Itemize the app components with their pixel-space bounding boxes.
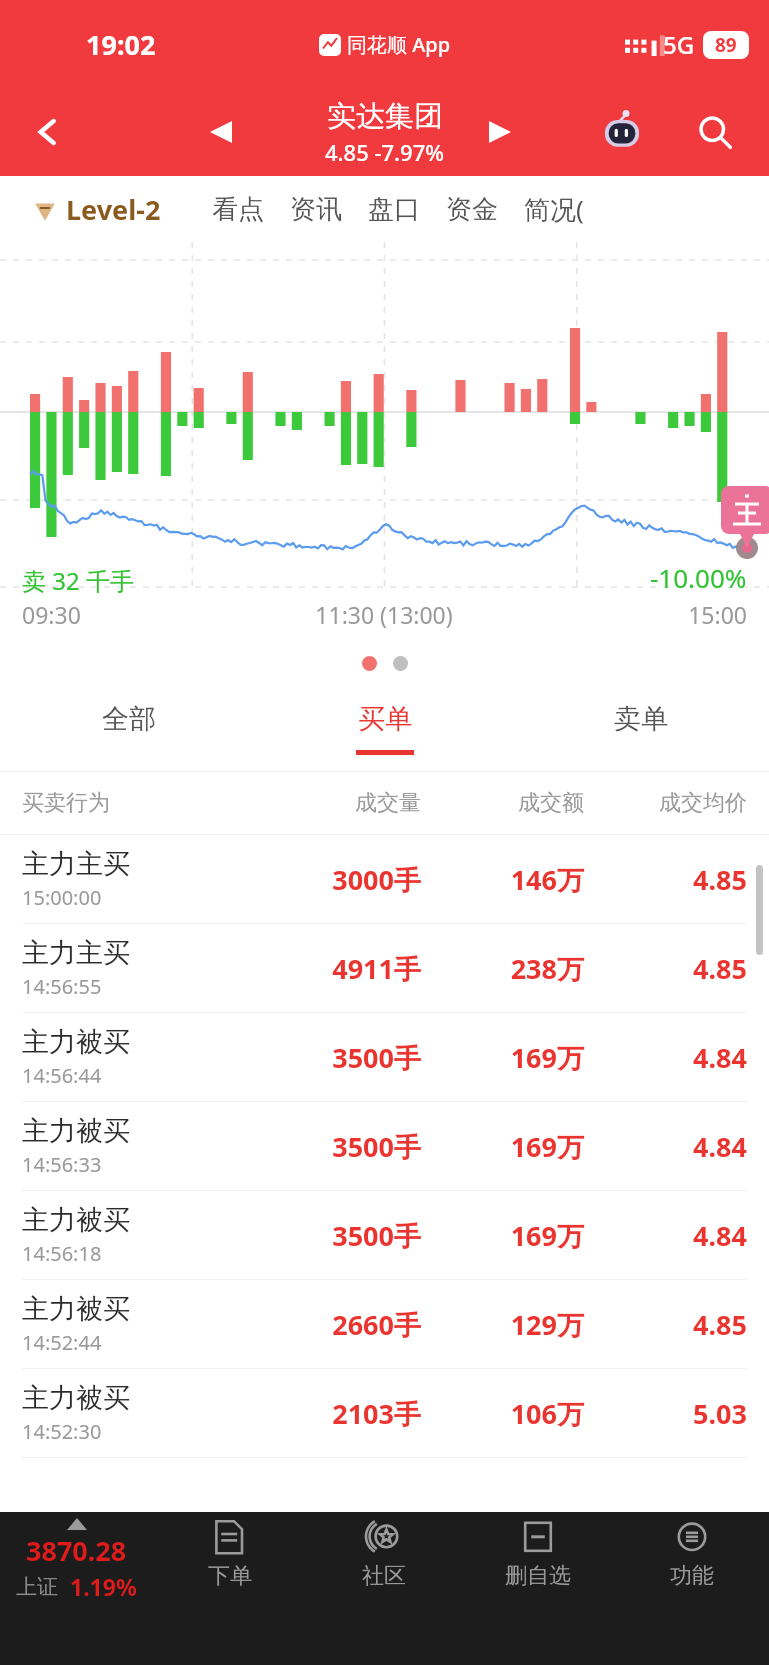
staticText: 全部 — [102, 702, 156, 736]
staticText: 卖 32 千手 — [22, 564, 134, 597]
button[interactable]: 简况( — [511, 191, 597, 227]
staticText: 14:52:44 — [22, 1329, 102, 1356]
staticText: 5.03 — [584, 1395, 747, 1432]
button[interactable]: AI assistant — [595, 105, 649, 159]
staticText: 4.84 — [584, 1039, 747, 1076]
staticText: 成交均价 — [584, 789, 747, 817]
staticText: 社区 — [362, 1562, 406, 1590]
staticText: 1.19% — [70, 1571, 137, 1602]
staticText: 3000手 — [258, 861, 421, 898]
staticText: 146万 — [421, 861, 584, 898]
button[interactable]: Previous stock — [196, 107, 246, 157]
staticText: 资金 — [446, 193, 498, 226]
button[interactable]: 主力被买 — [0, 1013, 769, 1101]
staticText: 资讯 — [290, 193, 342, 226]
staticText: 上证 — [16, 1574, 58, 1600]
staticText: 功能 — [670, 1562, 714, 1590]
staticText: 主力主买 — [22, 847, 130, 881]
staticText: 4.84 — [584, 1217, 747, 1254]
staticText: 实达集团 — [327, 98, 443, 135]
button[interactable]: 资讯 — [277, 193, 355, 226]
staticText: 下单 — [208, 1562, 252, 1590]
button[interactable]: 下单 — [153, 1512, 307, 1622]
staticText: 169万 — [421, 1217, 584, 1254]
staticText: 2103手 — [258, 1395, 421, 1432]
button[interactable]: 删自选 — [461, 1512, 615, 1622]
staticText: 19:02 — [86, 26, 156, 63]
staticText: 15:00 — [505, 599, 747, 630]
staticText: 169万 — [421, 1039, 584, 1076]
staticText: 4.84 — [584, 1128, 747, 1165]
staticText: 3870.28 — [26, 1532, 127, 1569]
staticText: 169万 — [421, 1128, 584, 1165]
staticText: 买卖行为 — [22, 789, 258, 817]
staticText: 4.85 -7.97% — [325, 137, 444, 167]
button[interactable]: 3870.28 — [0, 1512, 153, 1622]
button[interactable]: Next stock — [475, 107, 525, 157]
staticText: 成交额 — [421, 789, 584, 817]
staticText: Level-2 — [66, 191, 161, 228]
staticText: 简况( — [524, 191, 584, 227]
button[interactable]: 全部 — [0, 684, 257, 772]
staticText: 主力主买 — [22, 936, 130, 970]
staticText: 4.85 — [584, 950, 747, 987]
button[interactable]: Level-2 — [32, 191, 161, 228]
staticText: 15:00:00 — [22, 884, 102, 911]
button[interactable]: 买单 — [257, 684, 513, 772]
button[interactable]: 主力被买 — [0, 1280, 769, 1368]
button[interactable]: 看点 — [199, 193, 277, 226]
staticText: 主力被买 — [22, 1381, 130, 1415]
staticText: 2660手 — [258, 1306, 421, 1343]
staticText: 106万 — [421, 1395, 584, 1432]
staticText: 238万 — [421, 950, 584, 987]
staticText: 看点 — [212, 193, 264, 226]
staticText: 3500手 — [258, 1217, 421, 1254]
staticText: 3500手 — [258, 1039, 421, 1076]
staticText: 删自选 — [505, 1562, 571, 1590]
staticText: 14:56:55 — [22, 973, 102, 1000]
staticText: -10.00% — [650, 560, 747, 595]
staticText: 4.85 — [584, 861, 747, 898]
staticText: 主力被买 — [22, 1292, 130, 1326]
staticText: 买单 — [358, 702, 412, 736]
staticText: 主力被买 — [22, 1025, 130, 1059]
staticText: 14:56:44 — [22, 1062, 102, 1089]
button[interactable]: Search — [687, 104, 743, 160]
button[interactable]: 社区 — [307, 1512, 461, 1622]
staticText: 14:56:18 — [22, 1240, 102, 1267]
button[interactable]: 主力被买 — [0, 1102, 769, 1190]
staticText: 14:52:30 — [22, 1418, 102, 1445]
button[interactable]: 功能 — [615, 1512, 769, 1622]
staticText: 同花顺 App — [347, 31, 451, 58]
staticText: 5G — [663, 28, 695, 61]
staticText: 主力被买 — [22, 1114, 130, 1148]
staticText: 89 — [715, 32, 737, 58]
button[interactable]: 主力被买 — [0, 1369, 769, 1457]
staticText: 129万 — [421, 1306, 584, 1343]
staticText: 盘口 — [368, 193, 420, 226]
button[interactable]: Back — [20, 104, 76, 160]
button[interactable]: 主力主买 — [0, 924, 769, 1012]
staticText: 14:56:33 — [22, 1151, 102, 1178]
staticText: 主力被买 — [22, 1203, 130, 1237]
button[interactable]: 资金 — [433, 193, 511, 226]
staticText: 卖单 — [614, 702, 668, 736]
button[interactable]: 主力被买 — [0, 1191, 769, 1279]
staticText: 成交量 — [258, 789, 421, 817]
staticText: 4.85 — [584, 1306, 747, 1343]
staticText: 11:30 (13:00) — [263, 599, 505, 630]
staticText: 3500手 — [258, 1128, 421, 1165]
staticText: 4911手 — [258, 950, 421, 987]
button[interactable]: 卖单 — [513, 684, 769, 772]
staticText: 09:30 — [22, 599, 263, 630]
button[interactable]: 盘口 — [355, 193, 433, 226]
button[interactable]: 主力主买 — [0, 835, 769, 923]
